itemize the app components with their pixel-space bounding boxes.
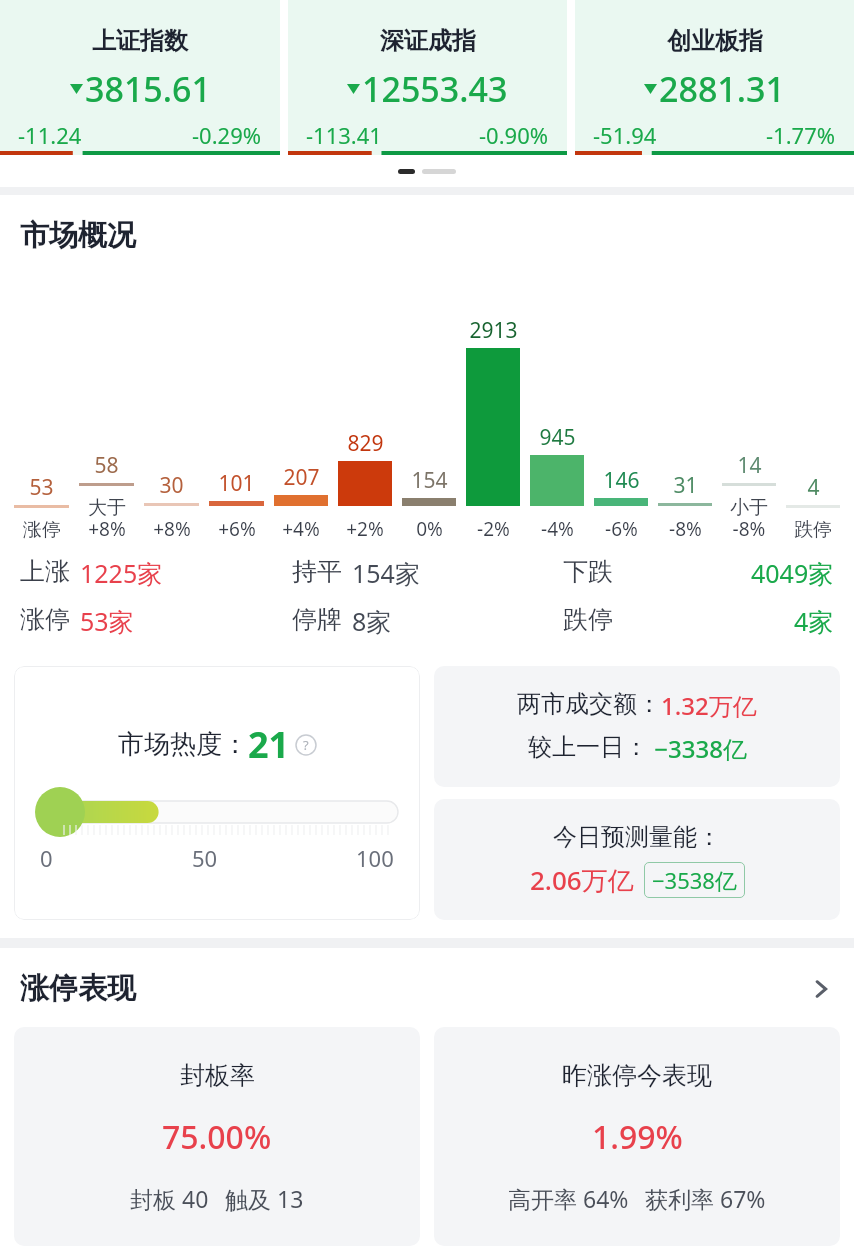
staticText: 146 — [603, 466, 640, 495]
staticText: 触及 13 — [225, 1183, 304, 1214]
staticText: 3815.61 — [85, 66, 211, 112]
staticText: 75.00% — [162, 1115, 272, 1159]
staticText: -8% — [669, 516, 702, 542]
staticText: 154 — [411, 466, 448, 495]
button[interactable]: 创业板指 — [575, 0, 854, 155]
staticText: 市场热度： — [118, 728, 248, 761]
staticText: 0% — [416, 516, 443, 542]
staticText: 2881.31 — [659, 66, 785, 112]
staticText: 高开率 64% — [508, 1183, 629, 1214]
staticText: 涨停 — [20, 604, 70, 635]
staticText: -51.94 — [593, 120, 657, 150]
staticText: 上证指数 — [92, 26, 188, 56]
button[interactable]: 昨涨停今表现 — [434, 1027, 840, 1246]
staticText: 跌停 — [563, 604, 613, 635]
staticText: 封板 40 — [130, 1183, 209, 1214]
staticText: 101 — [218, 469, 255, 498]
staticText: 2.06万亿 — [530, 862, 634, 898]
staticText: +4% — [282, 516, 320, 542]
staticText: -6% — [605, 516, 638, 542]
staticText: 4049家 — [751, 556, 834, 590]
staticText: -2% — [477, 516, 510, 542]
staticText: 持平 — [292, 556, 342, 587]
staticText: 2913 — [469, 316, 518, 345]
staticText: −3538亿 — [652, 865, 737, 895]
staticText: 1.99% — [592, 1115, 683, 1159]
staticText: 停牌 — [292, 604, 342, 635]
staticText: +8% — [153, 516, 191, 542]
staticText: 封板率 — [180, 1060, 255, 1091]
staticText: 深证成指 — [380, 26, 476, 56]
staticText: 1225家 — [80, 556, 163, 590]
button[interactable]: 市场热度： — [14, 666, 420, 920]
button[interactable]: 涨停表现 — [20, 970, 834, 1007]
button[interactable]: 说明 — [296, 735, 316, 755]
staticText: -113.41 — [306, 120, 382, 150]
other: 查看更多 — [808, 976, 834, 1002]
staticText: 跌停 — [794, 518, 832, 542]
button[interactable]: 深证成指 — [288, 0, 567, 155]
staticText: 下跌 — [563, 556, 613, 587]
staticText: -4% — [541, 516, 574, 542]
staticText: 945 — [539, 423, 576, 452]
staticText: 1.32万亿 — [661, 689, 757, 722]
staticText: 小于 -8% — [730, 496, 768, 542]
staticText: -0.29% — [192, 120, 262, 150]
staticText: 0 — [40, 843, 53, 873]
staticText: 4 — [807, 473, 820, 502]
staticText: -1.77% — [766, 120, 836, 150]
button[interactable]: 两市成交额： — [434, 666, 840, 787]
staticText: 50 — [192, 843, 218, 873]
staticText: 100 — [356, 843, 394, 873]
staticText: 53 — [29, 473, 54, 502]
staticText: 53家 — [80, 604, 134, 638]
staticText: 12553.43 — [362, 66, 508, 112]
staticText: 8家 — [352, 604, 392, 638]
staticText: 14 — [737, 451, 762, 480]
staticText: 两市成交额： — [517, 689, 661, 719]
staticText: 31 — [673, 471, 698, 500]
staticText: 市场概况 — [20, 217, 136, 254]
button[interactable]: 上证指数 — [0, 0, 280, 155]
staticText: 大于 +8% — [88, 496, 126, 542]
staticText: 207 — [283, 463, 320, 492]
staticText: +2% — [346, 516, 384, 542]
button[interactable]: 今日预测量能： — [434, 799, 840, 920]
staticText: 30 — [159, 471, 184, 500]
staticText: -0.90% — [479, 120, 549, 150]
staticText: 58 — [94, 451, 119, 480]
staticText: 154家 — [352, 556, 420, 590]
staticText: 上涨 — [20, 556, 70, 587]
staticText: 昨涨停今表现 — [562, 1060, 712, 1091]
staticText: 4家 — [794, 604, 834, 638]
button[interactable]: 封板率 — [14, 1027, 420, 1246]
staticText: 21 — [248, 720, 290, 769]
staticText: −3338亿 — [648, 732, 747, 765]
staticText: ? — [303, 736, 309, 754]
staticText: 涨停表现 — [20, 970, 136, 1007]
staticText: 创业板指 — [667, 26, 763, 56]
staticText: -11.24 — [18, 120, 82, 150]
staticText: 获利率 67% — [645, 1183, 766, 1214]
staticText: 较上一日： — [528, 732, 648, 762]
staticText: 今日预测量能： — [553, 822, 721, 852]
staticText: 829 — [347, 429, 384, 458]
staticText: +6% — [218, 516, 256, 542]
staticText: 涨停 — [23, 518, 61, 542]
